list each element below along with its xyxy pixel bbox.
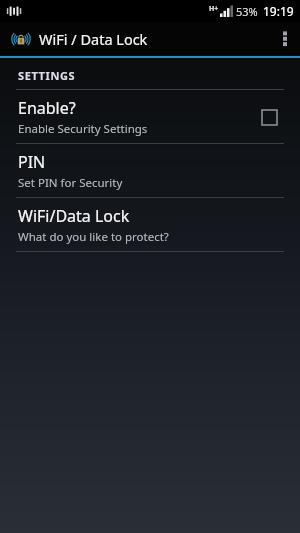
button[interactable]: Enable?	[0, 90, 300, 143]
staticText: What do you like to protect?	[18, 229, 169, 245]
staticText: 19:19	[263, 3, 294, 19]
staticText: 53%	[236, 4, 258, 19]
button[interactable]: WiFi/Data Lock	[0, 198, 300, 251]
button[interactable]: PIN	[0, 144, 300, 197]
staticText: PIN	[18, 151, 46, 173]
staticText: H+	[209, 4, 219, 14]
staticText: Enable?	[18, 97, 76, 119]
button[interactable]: Enable checkbox	[254, 102, 284, 132]
staticText: SETTINGS	[18, 68, 76, 83]
staticText: WiFi/Data Lock	[18, 205, 130, 227]
button[interactable]: More options	[270, 22, 300, 56]
staticText: Set PIN for Security	[18, 175, 123, 191]
staticText: Enable Security Settings	[18, 121, 148, 137]
staticText: WiFi / Data Lock	[39, 29, 148, 49]
